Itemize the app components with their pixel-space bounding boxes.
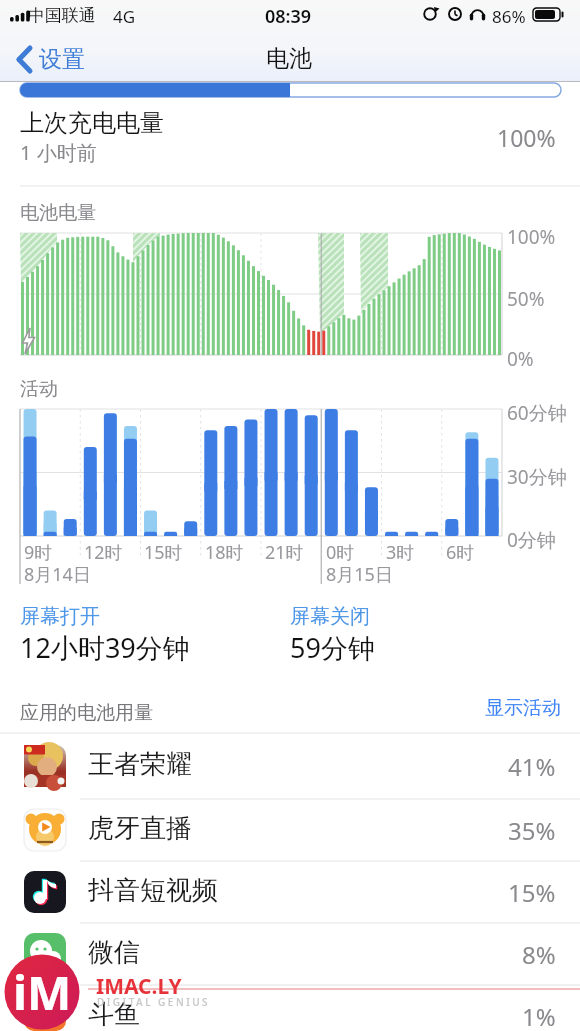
staticText: 抖音短视频	[88, 874, 218, 907]
staticText: 9时	[24, 540, 53, 565]
staticText: 35%	[508, 814, 556, 847]
staticText: 50%	[507, 286, 545, 312]
staticText: 08:39	[265, 4, 312, 29]
staticText: 0%	[507, 346, 534, 372]
staticText: 41%	[508, 750, 556, 783]
staticText: 100%	[507, 224, 556, 250]
staticText: IMAC.LY	[96, 972, 182, 1001]
button[interactable]	[0, 985, 580, 1031]
staticText: 15%	[508, 876, 556, 909]
staticText: 8月14日	[24, 562, 91, 587]
staticText: 12时	[84, 540, 123, 565]
staticText: 1 小时前	[20, 139, 97, 166]
staticText: 18时	[205, 540, 244, 565]
staticText: 8月15日	[326, 562, 393, 587]
staticText: 6时	[446, 540, 475, 565]
button[interactable]	[0, 799, 580, 861]
staticText: 3时	[386, 540, 415, 565]
staticText: 中国联通	[28, 5, 96, 26]
staticText: 应用的电池用量	[20, 701, 153, 725]
button[interactable]	[0, 36, 100, 82]
staticText: 21时	[265, 540, 304, 565]
staticText: 0分钟	[507, 527, 556, 553]
staticText: 屏幕打开	[20, 604, 100, 629]
staticText: 12小时39分钟	[20, 629, 190, 666]
staticText: 59分钟	[290, 629, 375, 666]
button[interactable]	[0, 861, 580, 923]
staticText: 屏幕关闭	[290, 604, 370, 629]
staticText: DIGITAL GENIUS	[97, 995, 211, 1009]
staticText: 100%	[497, 122, 556, 153]
staticText: 电池	[266, 44, 312, 73]
staticText: 15时	[144, 540, 183, 565]
staticText: 30分钟	[507, 464, 567, 490]
staticText: 王者荣耀	[88, 748, 192, 781]
staticText: 0时	[326, 540, 355, 565]
staticText: 4G	[113, 5, 136, 28]
staticText: 60分钟	[507, 400, 567, 426]
staticText: 1%	[522, 1000, 556, 1031]
button[interactable]: 显示活动	[361, 696, 561, 720]
staticText: 上次充电电量	[20, 108, 164, 138]
staticText: 显示活动	[485, 696, 561, 720]
staticText: iM	[13, 960, 72, 1024]
staticText: 斗鱼	[88, 998, 140, 1031]
staticText: 86%	[492, 5, 526, 28]
staticText: 活动	[20, 377, 58, 401]
button[interactable]	[0, 735, 580, 797]
staticText: 设置	[39, 45, 85, 74]
staticText: 8%	[522, 938, 556, 971]
staticText: 虎牙直播	[88, 812, 192, 845]
button[interactable]	[0, 923, 580, 985]
staticText: 电池电量	[20, 201, 96, 225]
staticText: 微信	[88, 936, 140, 969]
